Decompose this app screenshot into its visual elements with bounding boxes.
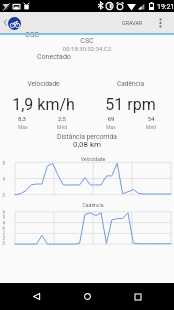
button[interactable]: Home	[72, 283, 102, 310]
button[interactable]: More options	[153, 12, 168, 33]
staticText: Conectado	[37, 53, 71, 61]
staticText: 69	[91, 115, 131, 122]
staticText: CSC	[0, 37, 174, 45]
staticText: 1,9 km/h	[0, 95, 87, 114]
button[interactable]: Back	[21, 283, 51, 310]
button[interactable]: Recent apps	[123, 283, 153, 310]
staticText: Velocidade	[0, 80, 87, 88]
staticText: 00:18:30:32:34:C2	[0, 45, 174, 52]
staticText: Méd	[42, 124, 82, 130]
staticText: 0,08 km	[0, 140, 174, 149]
staticText: 0	[0, 193, 5, 198]
staticText: 23	[0, 231, 5, 241]
staticText: Max	[91, 124, 131, 130]
staticText: 69	[0, 210, 5, 220]
staticText: Distância percorrida	[0, 133, 174, 141]
staticText: GRAVAR	[122, 20, 143, 26]
staticText: Max	[3, 124, 43, 130]
staticText: 46	[0, 221, 5, 231]
staticText: Méd	[131, 124, 171, 130]
button[interactable]: GRAVAR	[117, 15, 148, 30]
staticText: 54	[131, 115, 171, 122]
staticText: 0	[0, 241, 5, 246]
staticText: CSC	[25, 30, 40, 39]
staticText: Cadência	[87, 80, 174, 88]
button[interactable]: Navigate up	[0, 12, 10, 33]
staticText: Velocidade	[15, 156, 171, 162]
staticText: 2,5	[42, 115, 82, 122]
staticText: 51 rpm	[87, 95, 174, 114]
staticText: 19:21	[157, 3, 174, 11]
staticText: 4	[0, 177, 5, 182]
staticText: Cadência	[15, 202, 171, 208]
staticText: 8	[0, 161, 5, 166]
staticText: 8,3	[2, 115, 42, 122]
